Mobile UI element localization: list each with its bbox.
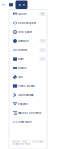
staticText: -- xyxy=(41,49,43,51)
staticText: Shortcut: Press '/' on the page to open … xyxy=(12,140,43,145)
staticText: Code snippet xyxy=(18,21,36,25)
button[interactable]: Jira xyxy=(9,72,47,81)
button[interactable]: Page layouts xyxy=(8,0,14,9)
button[interactable]: Jira roadmap xyxy=(9,90,47,99)
staticText: Date xyxy=(18,57,23,61)
button[interactable]: Status xyxy=(9,63,47,72)
button[interactable]: Table of Contents xyxy=(9,108,47,117)
staticText: ▾ xyxy=(23,3,25,7)
staticText: Info panel xyxy=(18,30,32,34)
staticText: View more xyxy=(18,120,31,124)
button[interactable]: Trello Board xyxy=(9,81,47,90)
button[interactable]: Expand xyxy=(9,99,47,108)
staticText: 99 xyxy=(41,13,43,15)
button[interactable]: More formatting options xyxy=(0,0,6,9)
staticText: <> xyxy=(41,40,43,42)
staticText: Trello Board xyxy=(18,84,35,88)
staticText: Quote xyxy=(18,12,26,16)
staticText: Decision xyxy=(18,39,29,43)
button[interactable]: Divider xyxy=(9,45,47,54)
staticText: Expand xyxy=(18,102,28,106)
staticText: Jira roadmap xyxy=(18,93,34,97)
button[interactable]: Decision xyxy=(9,36,47,45)
button[interactable]: View more xyxy=(9,117,47,126)
staticText: + xyxy=(18,1,22,8)
staticText: Divider xyxy=(18,48,27,52)
button[interactable]: Date xyxy=(9,54,47,63)
button[interactable]: Insert element xyxy=(15,0,27,9)
staticText: Table of Contents xyxy=(18,111,41,115)
staticText: // xyxy=(41,58,43,60)
staticText: Jira xyxy=(18,75,22,79)
button[interactable]: Quote xyxy=(9,9,47,18)
staticText: Status xyxy=(18,66,26,70)
button[interactable]: Code snippet xyxy=(9,18,47,27)
button[interactable]: Info panel xyxy=(9,27,47,36)
